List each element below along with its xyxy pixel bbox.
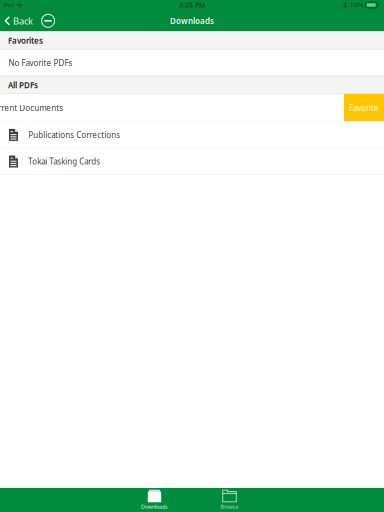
- staticText: iPad: [3, 1, 13, 9]
- staticText: Favorites: [8, 35, 43, 46]
- button[interactable]: No Favorite PDFs: [0, 50, 384, 76]
- button[interactable]: Browse: [192, 488, 267, 512]
- button[interactable]: Current Documents: [0, 94, 344, 122]
- staticText: Current Documents: [0, 102, 63, 113]
- staticText: Browse: [220, 503, 238, 510]
- staticText: Downloads: [141, 503, 168, 510]
- staticText: Tokai Tasking Cards: [28, 156, 100, 167]
- staticText: No Favorite PDFs: [9, 58, 73, 68]
- button[interactable]: Edit downloads: [37, 10, 57, 32]
- staticText: 100%: [350, 1, 363, 9]
- staticText: Favorite: [349, 102, 379, 113]
- staticText: Back: [13, 15, 33, 27]
- staticText: 3:25 PM: [179, 1, 205, 9]
- staticText: All PDFs: [8, 80, 38, 90]
- button[interactable]: Favorite: [344, 94, 384, 122]
- button[interactable]: Back: [0, 10, 37, 32]
- button[interactable]: Publications Corrections: [0, 122, 384, 148]
- button[interactable]: Downloads: [117, 488, 192, 512]
- staticText: Publications Corrections: [28, 130, 120, 140]
- button[interactable]: Tokai Tasking Cards: [0, 148, 384, 175]
- staticText: Downloads: [170, 15, 214, 26]
